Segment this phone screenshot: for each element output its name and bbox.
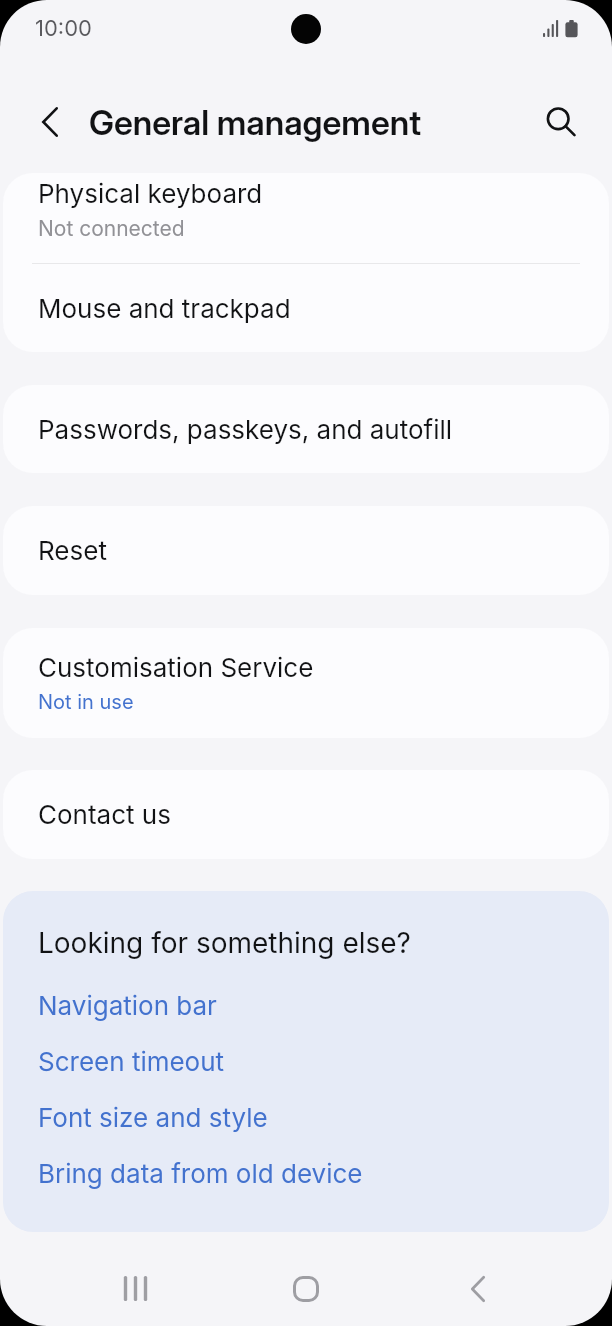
button[interactable]: Navigation bar <box>3 977 609 1033</box>
button[interactable]: Physical keyboard <box>3 173 609 263</box>
button[interactable]: Passwords, passkeys, and autofill <box>3 385 609 473</box>
button[interactable]: Reset <box>3 506 609 595</box>
staticText: Contact us <box>38 799 171 830</box>
button[interactable]: Back <box>442 1259 514 1319</box>
staticText: Passwords, passkeys, and autofill <box>38 414 453 445</box>
staticText: Screen timeout <box>38 1046 225 1077</box>
staticText: Not connected <box>38 216 185 241</box>
button[interactable]: Screen timeout <box>3 1033 609 1089</box>
staticText: 10:00 <box>35 15 92 42</box>
button[interactable]: Bring data from old device <box>3 1145 609 1201</box>
staticText: Customisation Service <box>38 652 314 683</box>
button[interactable]: Search <box>531 92 591 152</box>
staticText: Not in use <box>38 690 134 714</box>
button[interactable]: Home <box>270 1259 342 1319</box>
staticText: Font size and style <box>38 1102 268 1133</box>
button[interactable]: Recent apps <box>98 1258 170 1318</box>
button[interactable]: Contact us <box>3 770 609 859</box>
button[interactable]: Font size and style <box>3 1089 609 1145</box>
staticText: Looking for something else? <box>38 926 411 960</box>
staticText: Physical keyboard <box>38 178 263 209</box>
staticText: Mouse and trackpad <box>38 293 291 324</box>
button[interactable]: Mouse and trackpad <box>3 264 609 352</box>
staticText: General management <box>89 102 422 143</box>
staticText: Reset <box>38 535 107 566</box>
button[interactable]: Navigate up <box>20 92 80 152</box>
staticText: Navigation bar <box>38 990 217 1021</box>
staticText: Bring data from old device <box>38 1158 363 1189</box>
button[interactable]: Customisation Service <box>3 628 609 738</box>
